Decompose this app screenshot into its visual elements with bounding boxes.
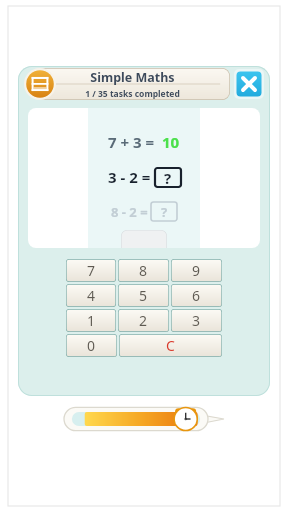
staticText: 7 (87, 261, 96, 280)
staticText: 5 (139, 286, 148, 305)
staticText: C (166, 336, 175, 355)
staticText: 8 (139, 261, 148, 280)
staticText: 7 + 3 = (108, 132, 158, 152)
button[interactable]: 8 (118, 259, 169, 282)
button[interactable]: Close (234, 69, 264, 99)
staticText: 2 (139, 311, 148, 330)
button[interactable]: 1 (66, 309, 116, 332)
button[interactable]: 5 (118, 284, 169, 307)
staticText: ? (161, 203, 168, 221)
staticText: ? (164, 168, 172, 187)
button[interactable]: 3 (171, 309, 222, 332)
button[interactable] (64, 404, 224, 434)
button[interactable]: 6 (171, 284, 222, 307)
button[interactable]: 0 (66, 334, 117, 357)
button[interactable]: 7 (66, 259, 116, 282)
button[interactable]: C (119, 334, 222, 357)
staticText: 3 - 2 = (108, 167, 155, 187)
staticText: 10 (158, 132, 180, 152)
button[interactable]: Simple Maths (24, 68, 56, 100)
staticText: 4 (87, 286, 96, 305)
button[interactable]: 9 (171, 259, 222, 282)
button[interactable]: 2 (118, 309, 169, 332)
staticText: 9 (192, 261, 201, 280)
staticText: Simple Maths (90, 69, 175, 86)
staticText: 1 / 35 tasks completed (85, 88, 180, 100)
staticText: 0 (87, 336, 96, 355)
staticText: 8 - 2 = (111, 203, 151, 221)
staticText: 3 (192, 311, 201, 330)
staticText: 1 (87, 311, 96, 330)
button[interactable]: Simple Maths (34, 68, 230, 100)
button[interactable]: 4 (66, 284, 116, 307)
staticText: 6 (192, 286, 201, 305)
